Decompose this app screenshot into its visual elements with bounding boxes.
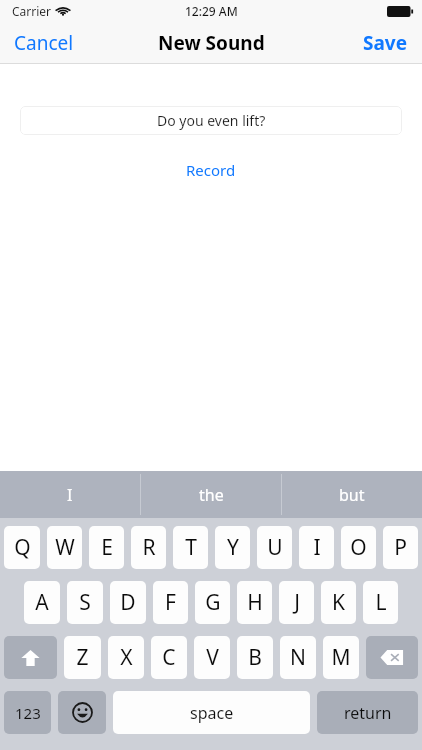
button[interactable]: Record	[168, 156, 254, 184]
button[interactable]: Y	[215, 526, 250, 569]
staticText: Z	[76, 643, 89, 672]
button[interactable]: I	[0, 471, 140, 518]
button[interactable]: J	[279, 581, 314, 624]
button[interactable]: D	[110, 581, 146, 624]
staticText: G	[205, 588, 221, 617]
staticText: F	[165, 588, 176, 617]
staticText: the	[199, 484, 224, 506]
button[interactable]: Cancel	[0, 22, 88, 64]
button[interactable]: Z	[64, 636, 101, 679]
staticText: I	[313, 533, 321, 562]
button[interactable]: Do you even lift?	[20, 106, 402, 135]
staticText: W	[55, 533, 75, 562]
button[interactable]: N	[280, 636, 316, 679]
staticText: P	[394, 533, 407, 562]
staticText: J	[294, 588, 300, 617]
button[interactable]: O	[341, 526, 376, 569]
staticText: Save	[363, 30, 408, 56]
staticText: Do you even lift?	[157, 111, 266, 130]
button[interactable]: P	[383, 526, 418, 569]
button[interactable]: C	[151, 636, 187, 679]
staticText: space	[190, 702, 234, 724]
button[interactable]: X	[108, 636, 144, 679]
button[interactable]: Backspace	[366, 636, 418, 679]
staticText: L	[375, 588, 387, 617]
button[interactable]: F	[153, 581, 188, 624]
staticText: D	[120, 588, 136, 617]
staticText: V	[206, 643, 219, 672]
staticText: C	[162, 643, 176, 672]
staticText: New Sound	[158, 30, 265, 56]
button[interactable]: R	[131, 526, 166, 569]
button[interactable]: A	[24, 581, 60, 624]
staticText: Record	[186, 160, 236, 180]
staticText: M	[331, 643, 351, 672]
button[interactable]: S	[67, 581, 103, 624]
button[interactable]: but	[282, 471, 422, 518]
button[interactable]: E	[89, 526, 124, 569]
button[interactable]: K	[321, 581, 356, 624]
staticText: E	[101, 533, 113, 562]
staticText: U	[267, 533, 283, 562]
button[interactable]: I	[299, 526, 334, 569]
staticText: O	[350, 533, 367, 562]
staticText: return	[344, 702, 392, 724]
staticText: 123	[15, 703, 41, 723]
staticText: A	[35, 588, 49, 617]
staticText: B	[248, 643, 262, 672]
staticText: Carrier	[12, 3, 52, 19]
button[interactable]: G	[195, 581, 230, 624]
staticText: R	[142, 533, 156, 562]
staticText: Y	[227, 533, 239, 562]
button[interactable]: Shift	[4, 636, 57, 679]
button[interactable]: 123	[4, 691, 51, 734]
staticText: 12:29 AM	[185, 3, 238, 19]
button[interactable]: the	[141, 471, 281, 518]
button[interactable]: Emoji keyboard	[58, 691, 106, 734]
button[interactable]: Q	[4, 526, 40, 569]
staticText: T	[185, 533, 197, 562]
staticText: I	[67, 484, 73, 506]
button[interactable]: W	[47, 526, 82, 569]
staticText: K	[332, 588, 345, 617]
button[interactable]: space	[113, 691, 310, 734]
button[interactable]: H	[237, 581, 272, 624]
staticText: S	[79, 588, 91, 617]
staticText: X	[120, 643, 133, 672]
button[interactable]: return	[317, 691, 418, 734]
button[interactable]: M	[323, 636, 359, 679]
button[interactable]: U	[257, 526, 292, 569]
button[interactable]: L	[363, 581, 398, 624]
staticText: H	[247, 588, 263, 617]
button[interactable]: B	[237, 636, 273, 679]
staticText: Q	[14, 533, 31, 562]
button[interactable]: V	[194, 636, 230, 679]
button[interactable]: T	[173, 526, 208, 569]
staticText: Cancel	[14, 30, 74, 56]
staticText: N	[290, 643, 306, 672]
staticText: but	[339, 484, 365, 506]
button[interactable]: Save	[349, 22, 422, 64]
